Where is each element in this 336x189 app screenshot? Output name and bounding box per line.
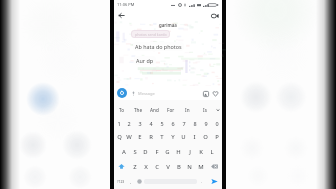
button[interactable]: O	[200, 130, 211, 144]
staticText: 7	[182, 120, 186, 127]
staticText: 11:06 PM	[117, 2, 135, 7]
button[interactable]: Back	[116, 10, 126, 20]
staticText: I	[193, 133, 196, 141]
button[interactable]: Comma	[127, 174, 134, 189]
button[interactable]: X	[140, 159, 151, 174]
button[interactable]: Ab hata do photos	[133, 42, 184, 51]
staticText: R	[149, 133, 153, 141]
button[interactable]: B	[173, 159, 184, 174]
staticText: 6	[171, 120, 175, 127]
button[interactable]: H	[173, 144, 184, 159]
staticText: photos send kardo	[135, 32, 167, 37]
staticText: 8	[193, 120, 197, 127]
staticText: N	[187, 163, 192, 171]
button[interactable]: Emoji	[134, 174, 144, 189]
button[interactable]: Gallery	[201, 89, 210, 98]
staticText: H	[176, 148, 181, 156]
button[interactable]: 7	[178, 116, 189, 130]
button[interactable]: L	[206, 144, 217, 159]
button[interactable]: 1	[114, 116, 124, 130]
button[interactable]: And	[146, 107, 162, 116]
button[interactable]: Video call	[209, 10, 220, 21]
button[interactable]: C	[151, 159, 162, 174]
button[interactable]: 6	[167, 116, 178, 130]
staticText: P	[215, 133, 219, 141]
button[interactable]: Message	[137, 89, 201, 98]
button[interactable]: T	[156, 130, 167, 144]
button[interactable]: Z	[129, 159, 140, 174]
staticText: X	[144, 163, 148, 171]
staticText: Q	[117, 133, 122, 141]
staticText: 4	[149, 120, 153, 127]
button[interactable]: Y	[167, 130, 178, 144]
button[interactable]: 3	[134, 116, 145, 130]
staticText: The	[134, 107, 143, 113]
staticText: ?123	[117, 179, 125, 184]
button[interactable]: 9	[200, 116, 211, 130]
button[interactable]: V	[162, 159, 173, 174]
staticText: For	[167, 107, 175, 113]
button[interactable]: Q	[114, 130, 124, 144]
staticText: 1	[117, 120, 121, 127]
button[interactable]: 8	[189, 116, 200, 130]
button[interactable]: Like	[211, 89, 220, 98]
staticText: Is	[203, 107, 207, 113]
button[interactable]: Is	[196, 107, 213, 116]
staticText: A	[122, 148, 126, 156]
button[interactable]: M	[195, 159, 206, 174]
staticText: D	[143, 148, 148, 156]
staticText: M	[198, 163, 204, 171]
staticText: .	[201, 179, 203, 184]
staticText: In	[185, 107, 190, 113]
button[interactable]: For	[162, 107, 179, 116]
button[interactable]: D	[140, 144, 151, 159]
staticText: Z	[133, 163, 137, 171]
staticText: K	[199, 148, 203, 156]
button[interactable]: Voice message	[129, 89, 137, 97]
button[interactable]: I	[189, 130, 200, 144]
staticText: E	[138, 133, 142, 141]
staticText: garimaa	[159, 22, 177, 28]
button[interactable]: More suggestions	[213, 108, 222, 116]
button[interactable]: E	[134, 130, 145, 144]
button[interactable]: S	[129, 144, 140, 159]
button[interactable]: Backspace	[206, 159, 222, 174]
button[interactable]: Aur dp	[134, 56, 156, 65]
button[interactable]: W	[124, 130, 134, 144]
staticText: S	[133, 148, 137, 156]
staticText: And	[150, 107, 159, 113]
staticText: Message	[137, 91, 155, 96]
button[interactable]: U	[178, 130, 189, 144]
staticText: 9	[204, 120, 208, 127]
button[interactable]: Send	[206, 174, 222, 189]
button[interactable]: ?123	[114, 174, 127, 189]
button[interactable]: The	[130, 107, 146, 116]
button[interactable]: Shift	[114, 159, 129, 174]
button[interactable]: A	[118, 144, 129, 159]
button[interactable]: P	[211, 130, 222, 144]
staticText: F	[155, 148, 159, 156]
button[interactable]: 5	[156, 116, 167, 130]
button[interactable]: 0	[211, 116, 222, 130]
staticText: L	[210, 148, 214, 156]
button[interactable]: To	[114, 107, 130, 116]
button[interactable]: In	[179, 107, 196, 116]
button[interactable]: photos send kardo	[131, 30, 170, 38]
button[interactable]: R	[145, 130, 156, 144]
staticText: W	[126, 133, 132, 141]
staticText: G	[165, 148, 170, 156]
staticText: 3	[138, 120, 142, 127]
staticText: O	[203, 133, 208, 141]
button[interactable]: 2	[124, 116, 134, 130]
staticText: C	[155, 163, 159, 171]
button[interactable]: Camera	[117, 88, 127, 98]
button[interactable]: G	[162, 144, 173, 159]
button[interactable]: K	[195, 144, 206, 159]
button[interactable]: N	[184, 159, 195, 174]
staticText: V	[166, 163, 170, 171]
button[interactable]: 4	[145, 116, 156, 130]
button[interactable]: F	[151, 144, 162, 159]
button[interactable]: J	[184, 144, 195, 159]
